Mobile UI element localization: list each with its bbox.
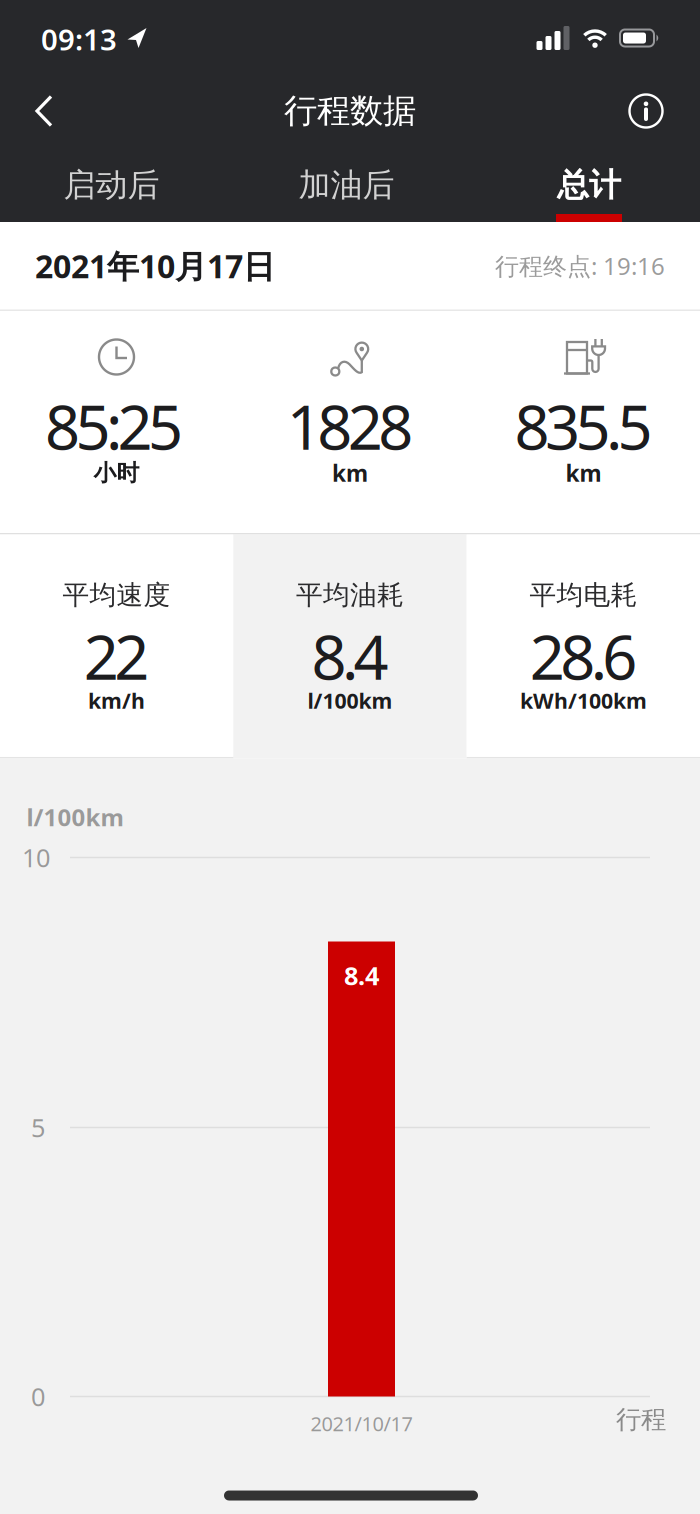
button[interactable]: 启动后	[55, 155, 167, 215]
staticText: 行程	[616, 1404, 666, 1435]
staticText: l/100km	[26, 801, 123, 833]
staticText: 平均速度	[63, 579, 171, 611]
staticText: 小时	[93, 459, 139, 487]
staticText: 平均油耗	[296, 579, 404, 611]
staticText: km/h	[88, 686, 145, 715]
button[interactable]: 加油后	[290, 155, 402, 215]
button[interactable]: 总计	[549, 155, 629, 215]
staticText: 总计	[557, 165, 621, 205]
staticText: kWh/100km	[520, 686, 647, 715]
staticText: 835.5	[514, 385, 652, 467]
staticText: 22	[84, 615, 149, 697]
staticText: 2021/10/17	[310, 1410, 412, 1437]
staticText: 启动后	[63, 165, 159, 205]
button[interactable]: 平均电耗	[467, 534, 700, 758]
button[interactable]: 平均油耗	[233, 534, 467, 758]
staticText: 行程数据	[284, 90, 416, 131]
staticText: 1828	[287, 385, 413, 467]
staticText: 09:13	[41, 19, 117, 58]
button[interactable]: Info	[620, 85, 672, 137]
staticText: 0	[31, 1380, 45, 1413]
button[interactable]: Back	[21, 80, 67, 141]
staticText: km	[332, 458, 368, 488]
staticText: 28.6	[530, 615, 637, 697]
staticText: l/100km	[307, 686, 392, 715]
staticText: 8.4	[344, 959, 379, 992]
staticText: 8.4	[311, 615, 388, 697]
staticText: 10	[22, 841, 50, 874]
staticText: 85:25	[45, 385, 183, 467]
staticText: 平均电耗	[529, 579, 637, 611]
button[interactable]: 平均速度	[0, 534, 233, 758]
staticText: km	[565, 458, 601, 488]
staticText: 行程终点: 19:16	[495, 250, 665, 282]
staticText: 加油后	[298, 165, 394, 205]
staticText: 5	[31, 1111, 45, 1144]
staticText: 2021年10月17日	[35, 244, 275, 287]
